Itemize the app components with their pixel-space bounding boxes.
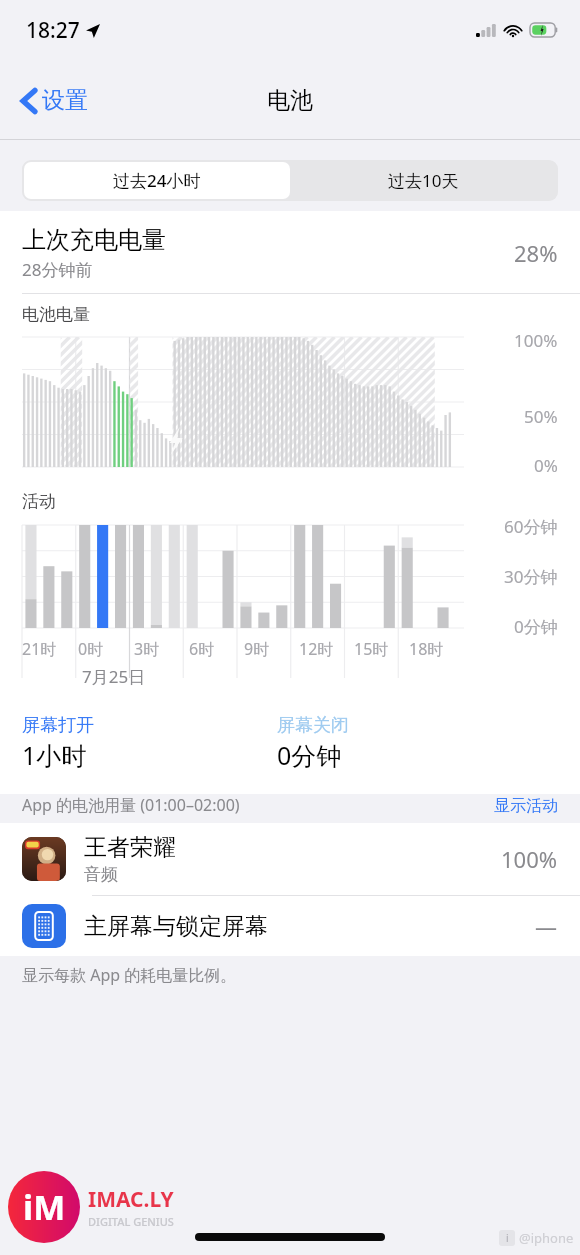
button[interactable]: 设置 bbox=[14, 80, 96, 121]
staticText: 显示每款 App 的耗电量比例。 bbox=[22, 964, 237, 986]
staticText: 设置 bbox=[42, 86, 88, 115]
staticText: i bbox=[506, 1231, 509, 1245]
staticText: 30分钟 bbox=[504, 565, 558, 588]
staticText: — bbox=[535, 911, 558, 941]
staticText: 0分钟 bbox=[514, 615, 558, 638]
staticText: 1小时 bbox=[22, 738, 87, 772]
staticText: 60分钟 bbox=[504, 515, 558, 538]
staticText: 18:27 bbox=[26, 16, 80, 45]
button[interactable]: 上次充电电量 bbox=[0, 211, 580, 293]
staticText: 100% bbox=[514, 329, 558, 352]
button[interactable]: 显示活动 bbox=[494, 796, 558, 816]
staticText: IMAC.LY bbox=[88, 1185, 174, 1214]
staticText: 18时 bbox=[409, 638, 444, 660]
staticText: 9时 bbox=[244, 638, 270, 660]
staticText: 28% bbox=[514, 238, 558, 268]
staticText: 3时 bbox=[134, 638, 160, 660]
button[interactable]: 屏幕关闭 bbox=[277, 714, 558, 772]
staticText: 28分钟前 bbox=[22, 258, 93, 281]
staticText: 0分钟 bbox=[277, 738, 342, 772]
staticText: 过去10天 bbox=[388, 169, 459, 192]
staticText: 7月25日 bbox=[82, 665, 146, 688]
staticText: 王者荣耀 bbox=[84, 833, 176, 862]
button[interactable]: 过去10天 bbox=[290, 162, 556, 199]
button[interactable]: 王者荣耀 bbox=[0, 823, 580, 895]
staticText: @iphone bbox=[519, 1229, 574, 1247]
staticText: 过去24小时 bbox=[113, 169, 201, 192]
staticText: 屏幕打开 bbox=[22, 714, 94, 737]
staticText: iM bbox=[23, 1184, 66, 1230]
staticText: 电池 bbox=[267, 86, 313, 115]
staticText: 15时 bbox=[354, 638, 389, 660]
staticText: DIGITAL GENIUS bbox=[88, 1214, 174, 1229]
staticText: 活动 bbox=[22, 491, 56, 512]
staticText: 屏幕关闭 bbox=[277, 714, 349, 737]
staticText: 0% bbox=[534, 454, 558, 477]
staticText: 100% bbox=[501, 844, 558, 874]
staticText: 上次充电电量 bbox=[22, 225, 166, 255]
button[interactable]: 主屏幕与锁定屏幕 bbox=[0, 896, 580, 956]
staticText: App 的电池用量 (01:00–02:00) bbox=[22, 794, 494, 816]
staticText: 0时 bbox=[78, 638, 104, 660]
button[interactable]: 屏幕打开 bbox=[22, 714, 277, 772]
staticText: 21时 bbox=[22, 638, 57, 660]
staticText: 6时 bbox=[189, 638, 215, 660]
button[interactable]: 过去24小时 bbox=[24, 162, 290, 199]
staticText: 12时 bbox=[299, 638, 334, 660]
staticText: 音频 bbox=[84, 864, 118, 885]
staticText: 电池电量 bbox=[22, 304, 90, 325]
staticText: 主屏幕与锁定屏幕 bbox=[84, 912, 268, 941]
staticText: 50% bbox=[524, 405, 558, 428]
staticText: 显示活动 bbox=[494, 796, 558, 816]
